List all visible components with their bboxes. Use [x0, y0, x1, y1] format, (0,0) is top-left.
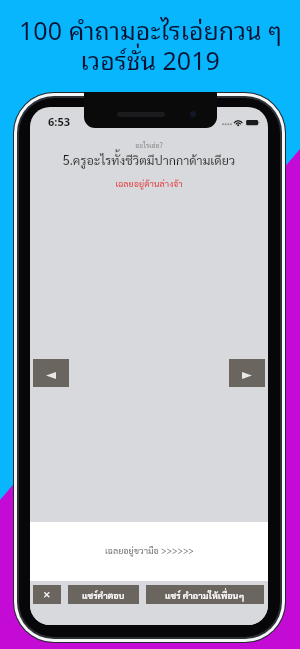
staticText: แชร์คำตอบ [82, 589, 125, 601]
button[interactable]: แชร์ คำถามให้เพื่อนๆ [146, 585, 264, 604]
staticText: อะไรเอ่ย? [30, 141, 268, 150]
staticText: เฉลยอยู่ขวามือ >>>>>> [105, 544, 194, 556]
button[interactable]: Next question [229, 359, 265, 387]
staticText: 6:53 [48, 114, 70, 129]
staticText: ✕ [43, 590, 51, 600]
staticText: 5.ครูอะไรทั้งชีวิตมีปากกาด้ามเดียว [30, 152, 268, 168]
staticText: เวอร์ชั่น 2019 [80, 39, 220, 79]
staticText: 100 คำถามอะไรเอ่ยกวน ๆ [19, 9, 282, 49]
button[interactable]: Previous question [33, 359, 69, 387]
button[interactable]: ✕ [33, 585, 61, 604]
button[interactable]: แชร์คำตอบ [68, 585, 139, 604]
staticText: เฉลยอยู่ด้านล่างจ้า [30, 177, 268, 189]
staticText: แชร์ คำถามให้เพื่อนๆ [165, 589, 245, 601]
